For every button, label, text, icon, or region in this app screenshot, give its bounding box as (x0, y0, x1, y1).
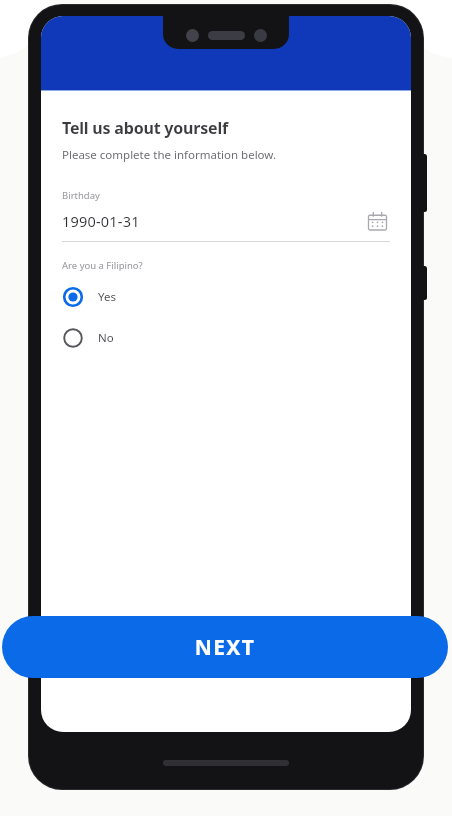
staticText: Birthday (62, 189, 100, 202)
staticText: Tell us about yourself (62, 117, 228, 139)
other: Pick date (364, 208, 390, 234)
button[interactable]: NEXT (2, 616, 448, 678)
staticText: Are you a Filipino? (62, 259, 143, 272)
button[interactable]: 1990-01-31 (62, 208, 390, 234)
staticText: No (98, 330, 114, 346)
staticText: Yes (98, 289, 116, 305)
staticText: NEXT (2, 633, 448, 662)
button[interactable]: Yes (62, 280, 390, 314)
staticText: 1990-01-31 (62, 211, 364, 231)
button[interactable]: No (62, 321, 390, 355)
staticText: Please complete the information below. (62, 147, 276, 163)
